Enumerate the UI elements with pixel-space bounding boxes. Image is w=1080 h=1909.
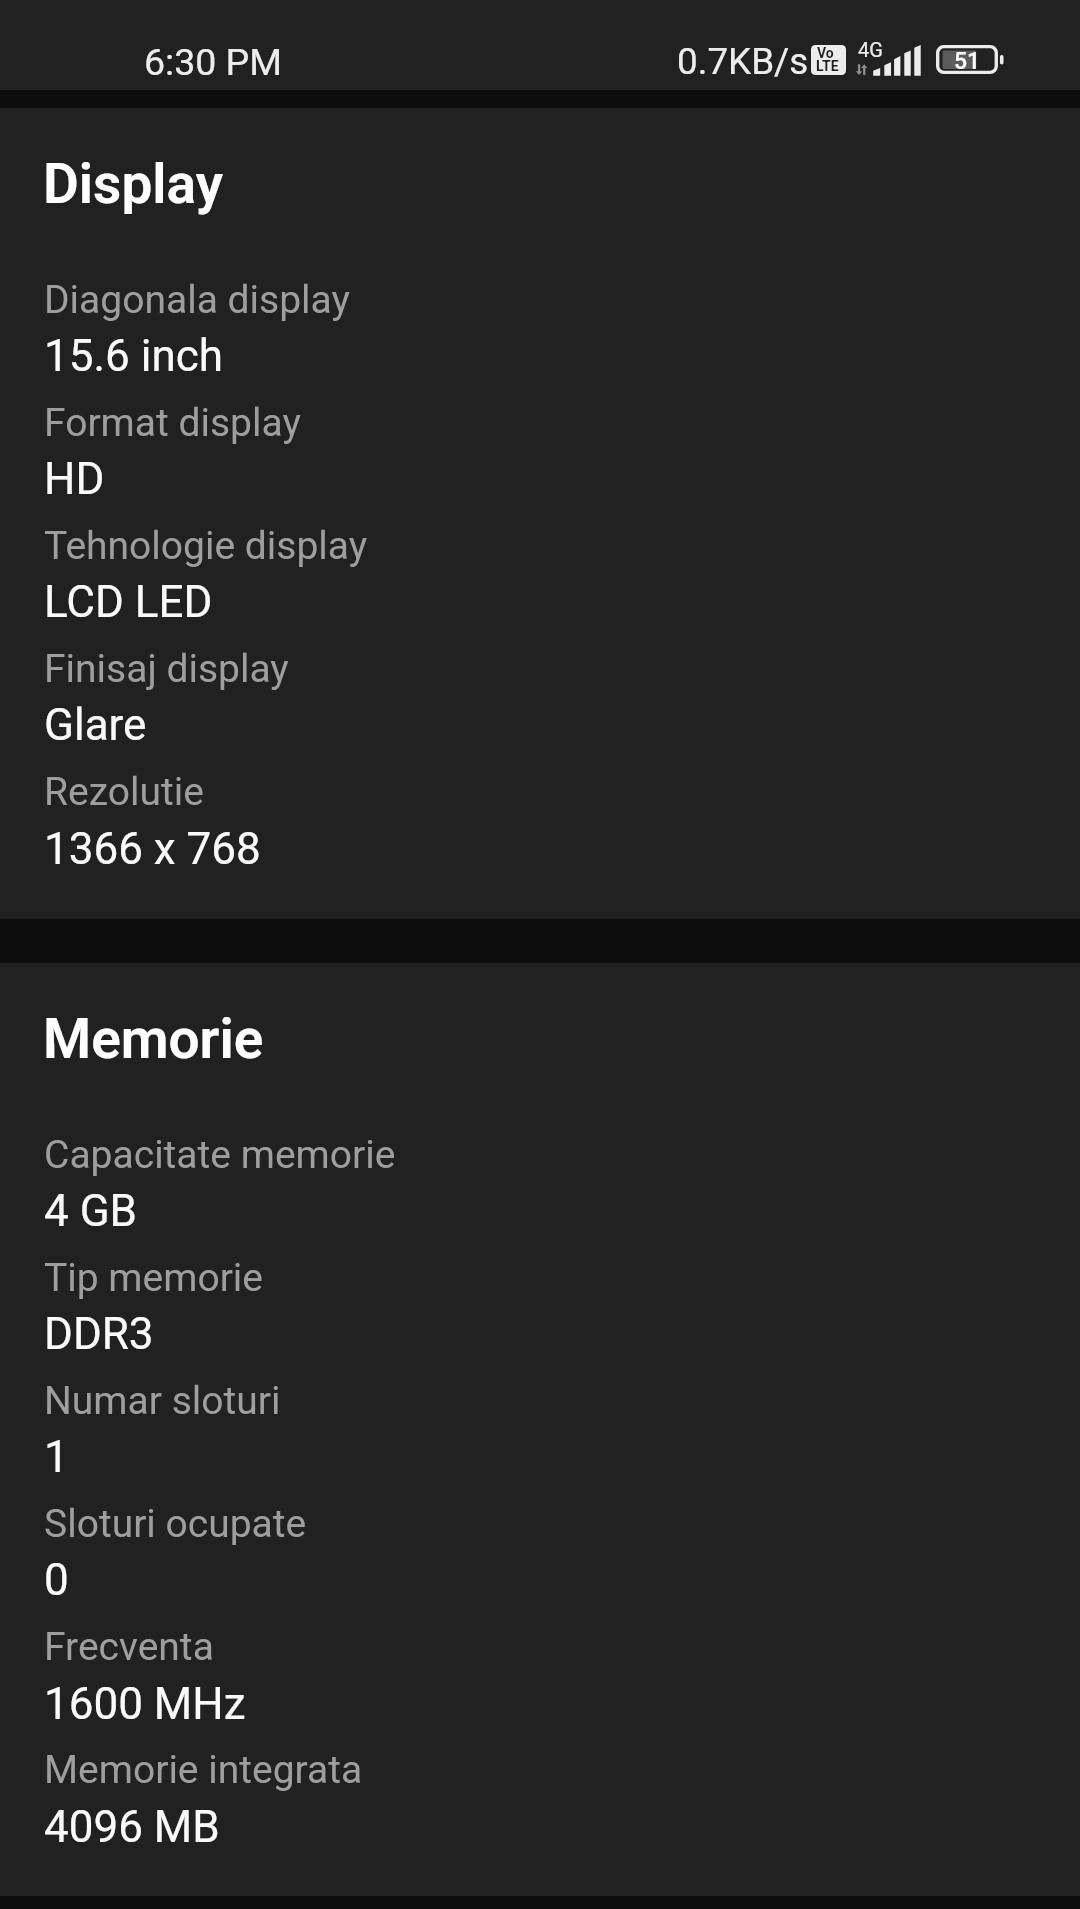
staticText: Frecventa <box>44 1624 214 1670</box>
staticText: Tip memorie <box>44 1255 264 1301</box>
button[interactable]: Tip memorie: DDR3 <box>0 1249 1080 1372</box>
button[interactable]: Tehnologie display: LCD LED <box>0 517 1080 640</box>
staticText: Capacitate memorie <box>44 1132 396 1178</box>
button[interactable]: Memorie integrata: 4096 MB <box>0 1741 1080 1864</box>
button[interactable]: Capacitate memorie: 4 GB <box>0 1126 1080 1249</box>
staticText: 1366 x 768 <box>44 823 261 875</box>
staticText: Memorie integrata <box>44 1747 363 1793</box>
staticText: Numar sloturi <box>44 1378 281 1424</box>
staticText: 6:30 PM <box>144 40 283 84</box>
staticText: Rezolutie <box>44 769 204 815</box>
other: Signal strength 4G <box>852 40 924 80</box>
other: VoLTE <box>811 45 846 75</box>
staticText: Tehnologie display <box>44 523 368 569</box>
staticText: LTE <box>816 58 839 74</box>
other: Battery 51 percent <box>936 45 1005 74</box>
staticText: HD <box>44 453 105 505</box>
staticText: Format display <box>44 400 301 446</box>
staticText: Diagonala display <box>44 277 350 323</box>
button[interactable]: Format display: HD <box>0 394 1080 517</box>
button[interactable]: Numar sloturi: 1 <box>0 1372 1080 1495</box>
staticText: Vo <box>817 45 834 61</box>
button[interactable]: Diagonala display: 15.6 inch <box>0 271 1080 394</box>
button[interactable]: Rezolutie: 1366 x 768 <box>0 763 1080 886</box>
staticText: 4 GB <box>44 1185 138 1237</box>
staticText: 0 <box>44 1554 69 1606</box>
staticText: LCD LED <box>44 576 213 628</box>
staticText: 51 <box>954 48 981 75</box>
staticText: 4G <box>858 38 883 61</box>
staticText: Finisaj display <box>44 646 289 692</box>
staticText: 15.6 inch <box>44 330 223 382</box>
staticText: Sloturi ocupate <box>44 1501 307 1547</box>
staticText: 4096 MB <box>44 1801 220 1853</box>
staticText: 1600 MHz <box>44 1678 246 1730</box>
staticText: Memorie <box>43 1007 264 1071</box>
staticText: DDR3 <box>44 1308 154 1360</box>
button[interactable]: Frecventa: 1600 MHz <box>0 1618 1080 1741</box>
staticText: 0.7KB/s <box>677 40 809 83</box>
staticText: Glare <box>44 699 147 751</box>
button[interactable]: Sloturi ocupate: 0 <box>0 1495 1080 1618</box>
staticText: 1 <box>44 1431 69 1483</box>
staticText: Display <box>43 152 224 216</box>
button[interactable]: Finisaj display: Glare <box>0 640 1080 763</box>
